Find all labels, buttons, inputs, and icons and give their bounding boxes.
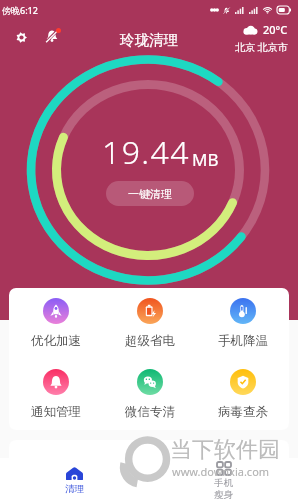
staticText: 一键清理 <box>128 187 172 201</box>
button[interactable]: 手机降温 <box>196 288 289 359</box>
button[interactable]: 病毒查杀 <box>196 359 289 430</box>
button[interactable]: Settings <box>9 25 33 49</box>
staticText: 20°C <box>263 22 288 37</box>
button[interactable]: 超级省电 <box>103 288 196 359</box>
staticText: 清理 <box>65 483 84 495</box>
staticText: MB <box>192 148 219 171</box>
button[interactable]: 手机 <box>149 458 298 500</box>
staticText: 手机 <box>214 477 233 489</box>
staticText: 通知管理 <box>31 404 81 420</box>
button[interactable]: 一键清理 <box>106 181 194 206</box>
staticText: 19.44 <box>102 130 190 174</box>
staticText: www.downxia.com <box>172 464 270 479</box>
button[interactable]: Notifications off <box>40 24 64 48</box>
staticText: 当下软件园 <box>170 436 280 464</box>
button[interactable]: 微信专清 <box>103 359 196 430</box>
staticText: 病毒查杀 <box>218 404 268 420</box>
staticText: 瘦身 <box>214 489 233 500</box>
staticText: 傍晚6:12 <box>2 4 38 16</box>
staticText: 超级省电 <box>125 333 175 349</box>
staticText: 北京 北京市 <box>235 40 288 54</box>
staticText: 优化加速 <box>31 333 81 349</box>
staticText: 手机降温 <box>218 333 268 349</box>
button[interactable]: 通知管理 <box>9 359 103 430</box>
button[interactable]: 清理 <box>0 458 149 500</box>
staticText: 微信专清 <box>125 404 175 420</box>
staticText: 玲珑清理 <box>120 31 178 49</box>
button[interactable]: 优化加速 <box>9 288 103 359</box>
